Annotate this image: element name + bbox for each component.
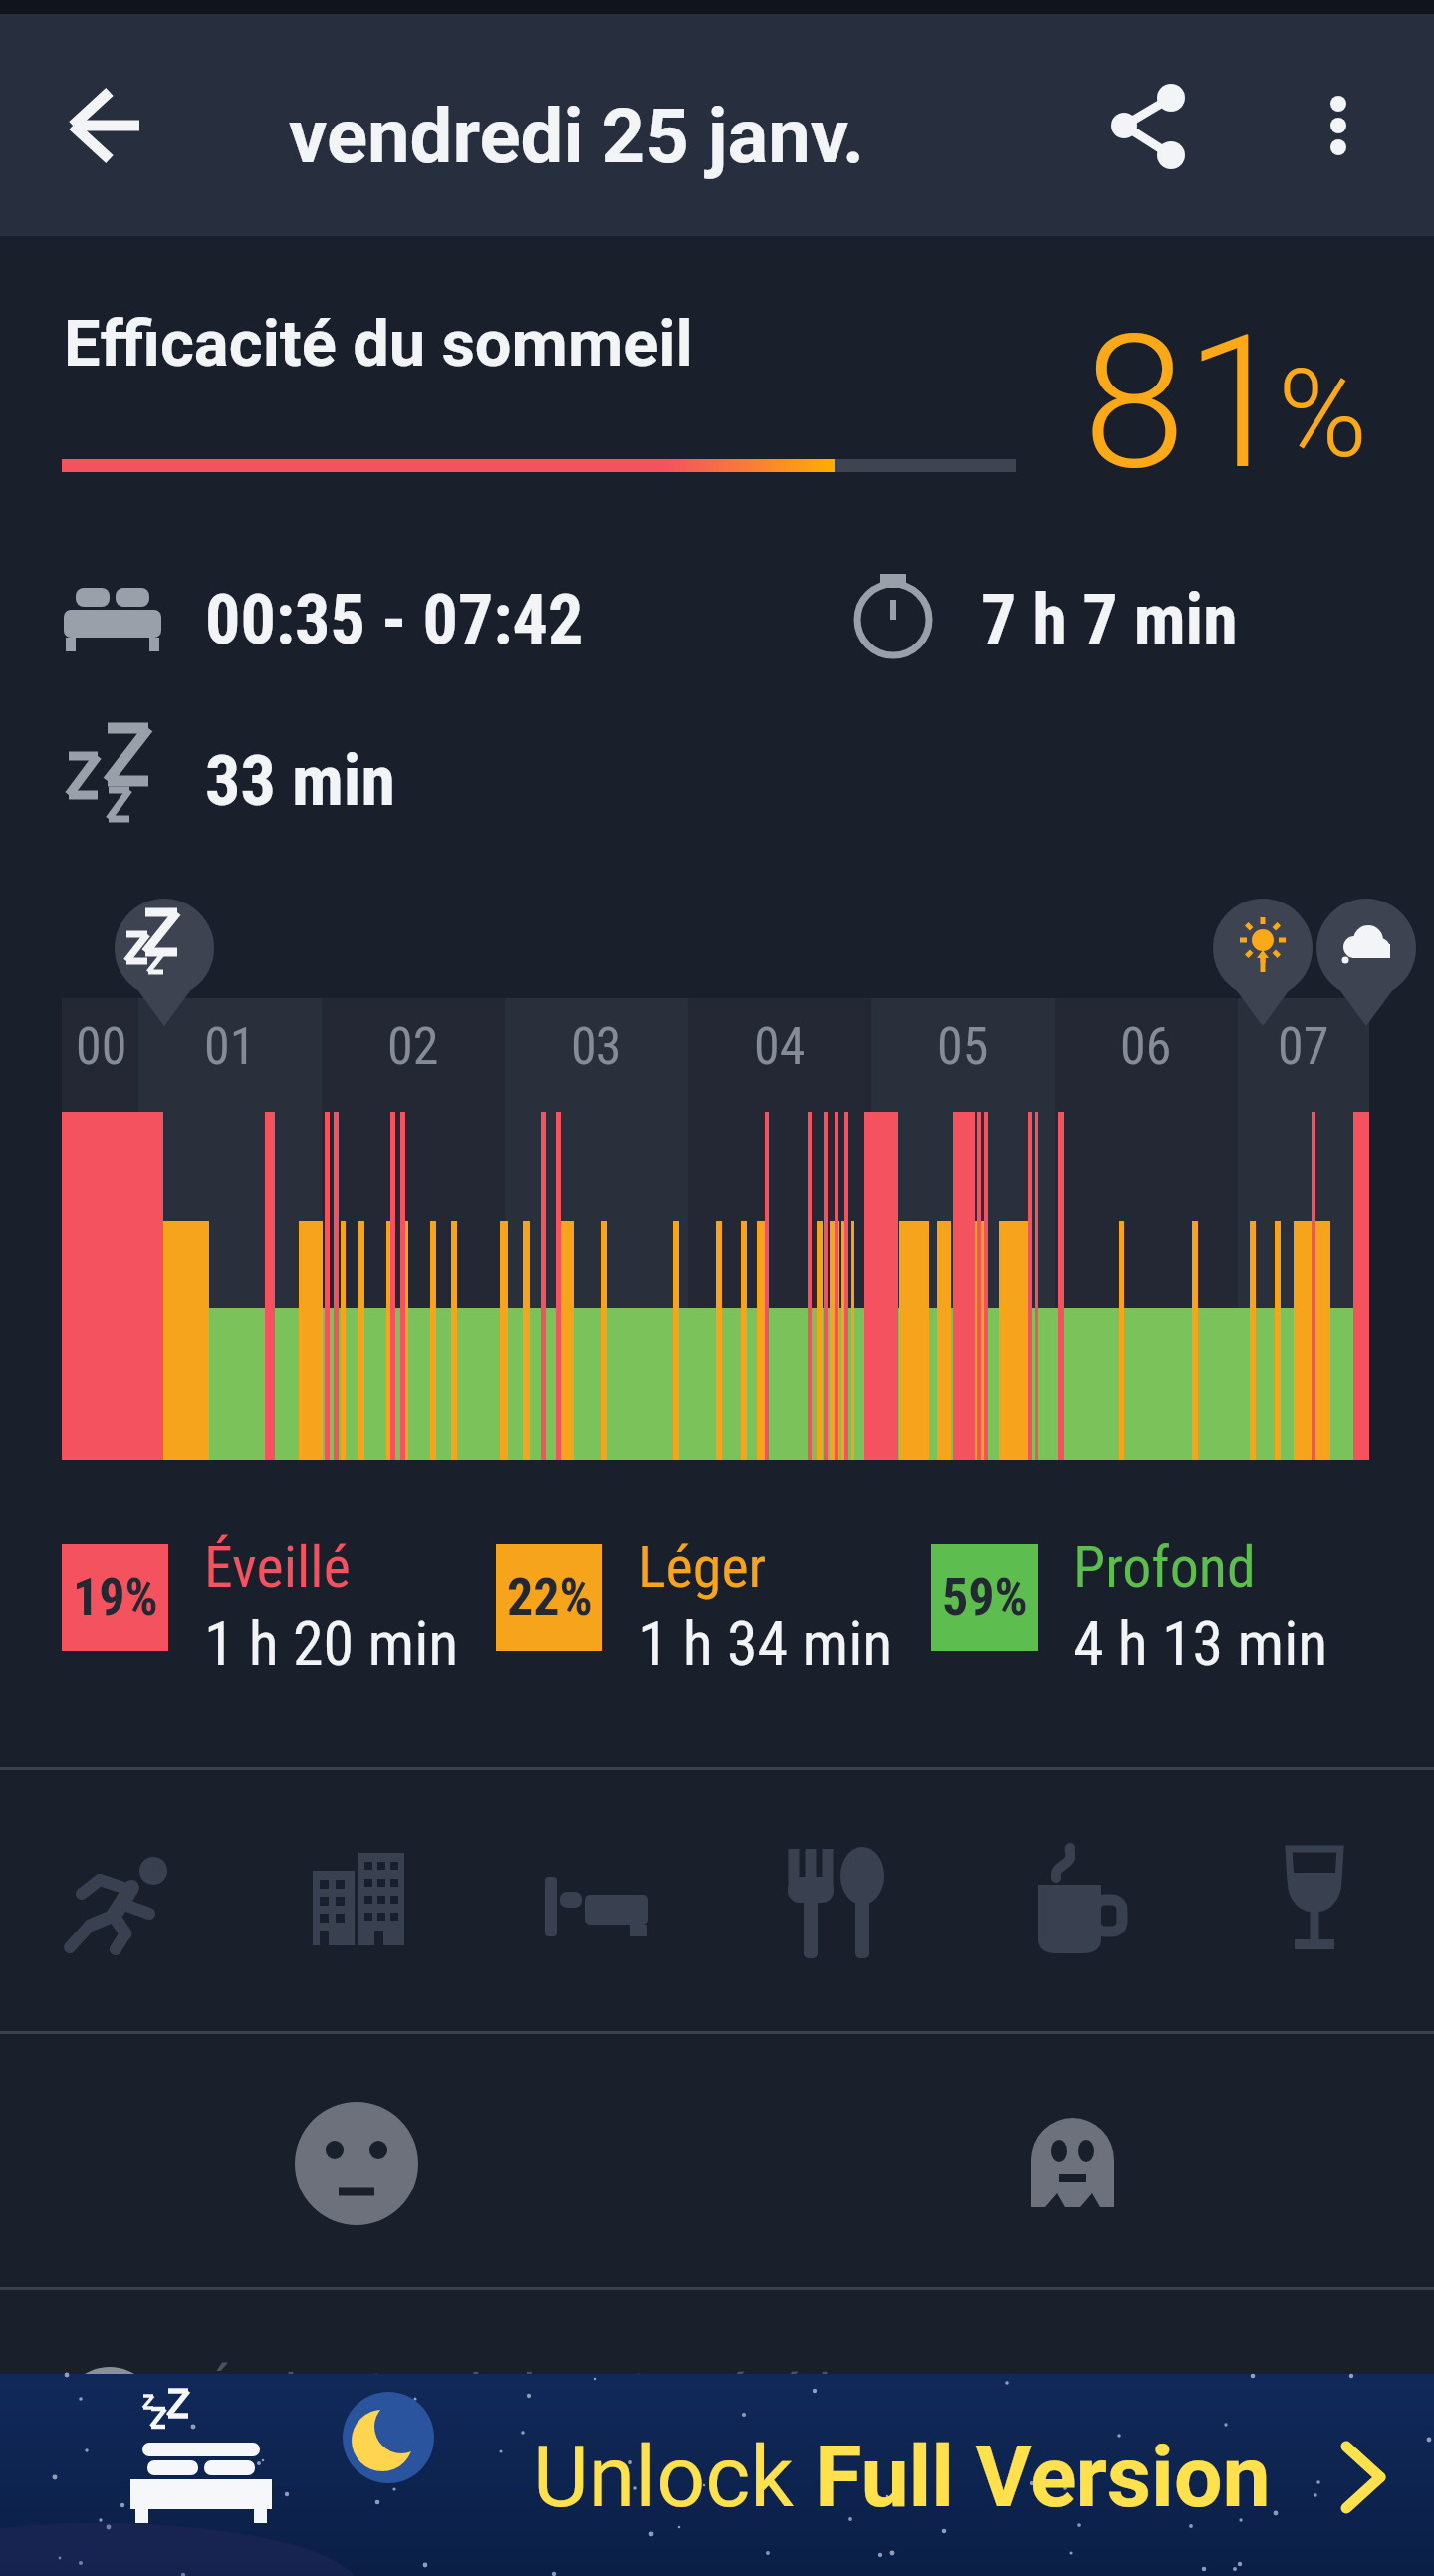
staticText: Léger <box>638 1533 767 1601</box>
button[interactable] <box>295 2102 418 2225</box>
staticText: 1 h 20 min <box>204 1607 459 1679</box>
button[interactable] <box>1031 2118 1120 2209</box>
staticText: 33 min <box>205 740 395 822</box>
button[interactable] <box>543 1865 652 1944</box>
staticText: 4 h 13 min <box>1074 1607 1328 1679</box>
button[interactable] <box>62 1848 177 1951</box>
staticText: 22% <box>507 1567 593 1628</box>
staticText: Évaluation de la nuit précédente <box>204 2361 931 2429</box>
staticText: Unlock Full Version <box>533 2427 1271 2527</box>
staticText: 1 h 34 min <box>638 1607 893 1679</box>
button[interactable] <box>1281 1845 1350 1962</box>
staticText: % <box>1278 344 1368 486</box>
staticText: 81 <box>1083 295 1289 511</box>
button[interactable] <box>1034 1848 1133 1959</box>
staticText: 00 <box>76 1016 127 1077</box>
staticText: Efficacité du sommeil <box>64 306 693 382</box>
staticText: 01 <box>204 1016 256 1077</box>
staticText: 19% <box>73 1567 158 1628</box>
button[interactable] <box>1085 62 1210 186</box>
button[interactable] <box>1280 60 1384 193</box>
staticText: 03 <box>571 1016 622 1077</box>
staticText: Éveillé <box>204 1533 351 1601</box>
staticText: 02 <box>387 1016 439 1077</box>
staticText: 06 <box>1120 1016 1172 1077</box>
staticText: 04 <box>754 1016 806 1077</box>
button[interactable] <box>309 1853 408 1950</box>
staticText: 7 h 7 min <box>981 579 1238 660</box>
staticText: vendredi 25 janv. <box>289 92 865 180</box>
button[interactable] <box>40 60 175 195</box>
staticText: 05 <box>937 1016 989 1077</box>
button[interactable] <box>785 1845 888 1962</box>
button[interactable]: Unlock Full Version <box>0 2374 1434 2576</box>
staticText: 00:35 - 07:42 <box>205 579 584 660</box>
staticText: 07 <box>1278 1016 1329 1077</box>
staticText: Profond <box>1074 1533 1256 1601</box>
staticText: 59% <box>942 1567 1028 1628</box>
